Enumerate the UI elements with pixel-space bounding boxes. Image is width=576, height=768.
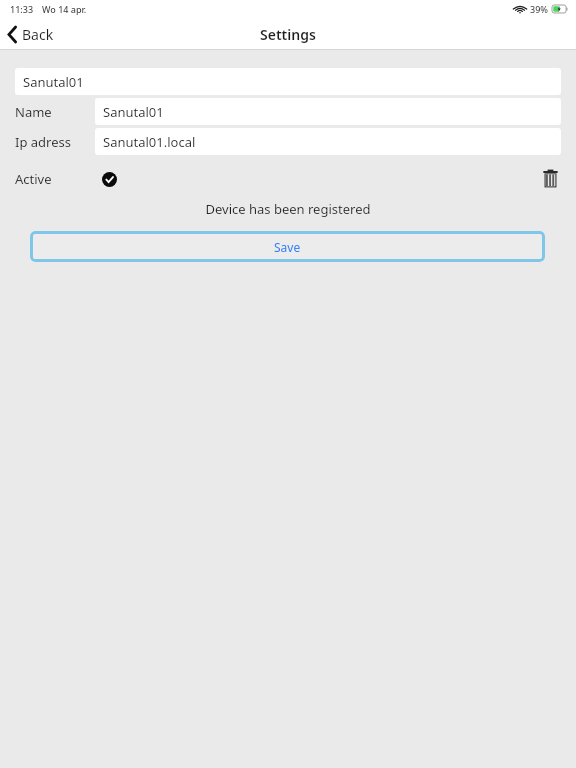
- button[interactable]: Delete: [538, 167, 562, 191]
- staticText: Sanutal01: [103, 103, 164, 121]
- staticText: Back: [22, 25, 54, 44]
- staticText: Sanutal01.local: [103, 133, 196, 151]
- staticText: Wo 14 apr.: [42, 3, 87, 15]
- staticText: 11:33: [10, 3, 34, 15]
- staticText: Sanutal01: [23, 73, 84, 91]
- staticText: Name: [15, 103, 52, 121]
- button[interactable]: Active: [98, 168, 120, 190]
- staticText: Device has been registered: [0, 200, 576, 218]
- button[interactable]: Back: [0, 21, 66, 48]
- staticText: Settings: [260, 25, 316, 44]
- button[interactable]: Save: [30, 231, 545, 262]
- staticText: Save: [274, 239, 301, 255]
- button[interactable]: Sanutal01.local: [95, 128, 561, 155]
- staticText: 39%: [530, 3, 548, 15]
- staticText: Ip adress: [15, 133, 71, 151]
- button[interactable]: Sanutal01: [95, 98, 561, 125]
- staticText: Active: [15, 170, 52, 188]
- button[interactable]: Sanutal01: [15, 68, 561, 95]
